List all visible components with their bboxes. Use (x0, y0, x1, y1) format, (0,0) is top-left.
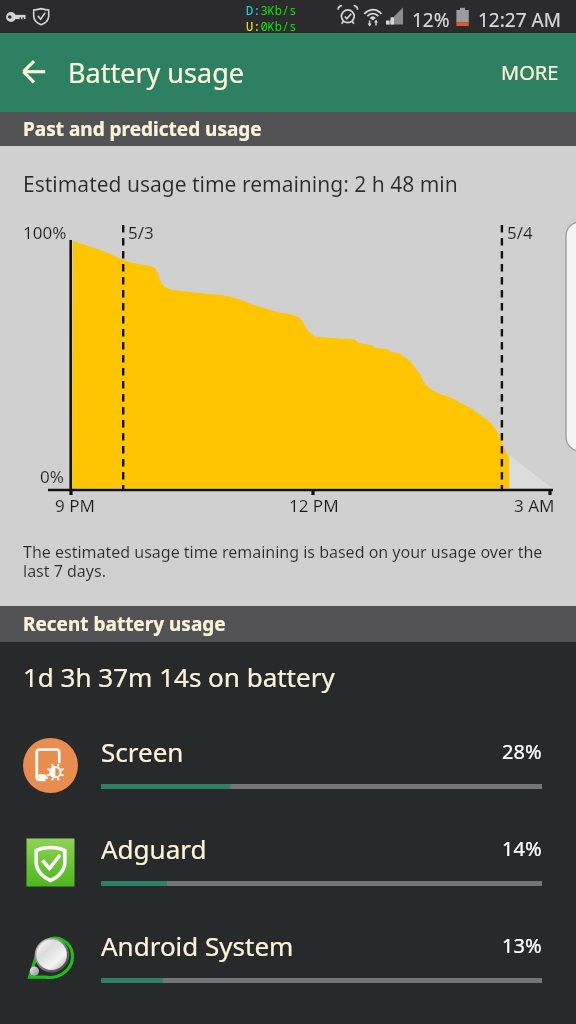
staticText: 0% (40, 465, 64, 488)
staticText: 1d 3h 37m 14s on battery (23, 659, 335, 694)
staticText: 12:27 AM (478, 7, 561, 33)
staticText: 3 AM (514, 494, 555, 517)
staticText: 5/4 (507, 221, 533, 244)
staticText: 28% (502, 738, 542, 765)
staticText: 12% (412, 7, 450, 33)
staticText: Past and predicted usage (23, 116, 262, 142)
staticText: 13% (502, 932, 542, 959)
button[interactable]: Back (14, 49, 62, 97)
staticText: Recent battery usage (23, 611, 226, 637)
staticText: Estimated usage time remaining: 2 h 48 m… (23, 170, 458, 199)
button[interactable]: Screen (0, 717, 576, 814)
staticText: Adguard (101, 831, 207, 866)
button[interactable]: MORE (484, 45, 576, 100)
staticText: 12 PM (289, 494, 339, 517)
staticText: U:0Kb/s (246, 18, 297, 34)
button[interactable]: Android System (0, 911, 576, 1008)
staticText: D:3Kb/s (246, 2, 297, 18)
staticText: The estimated usage time remaining is ba… (23, 541, 543, 582)
staticText: 9 PM (55, 494, 95, 517)
staticText: 5/3 (128, 221, 154, 244)
staticText: 14% (502, 835, 542, 862)
staticText: 100% (23, 221, 67, 244)
staticText: MORE (501, 59, 559, 86)
staticText: Android System (101, 928, 294, 963)
staticText: Battery usage (68, 54, 244, 91)
staticText: Screen (101, 734, 184, 769)
button[interactable]: Adguard (0, 814, 576, 911)
